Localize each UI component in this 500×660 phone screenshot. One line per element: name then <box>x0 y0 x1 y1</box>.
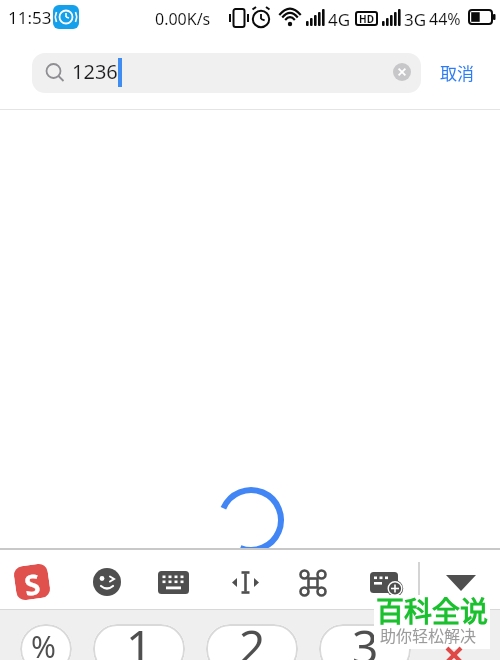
staticText: 1236 <box>72 58 118 85</box>
button[interactable]: % <box>20 624 72 660</box>
button[interactable] <box>370 570 404 597</box>
staticText: 2 <box>239 624 266 660</box>
staticText: 0.00K/s <box>155 8 211 30</box>
button[interactable] <box>393 63 411 81</box>
button[interactable]: 1 <box>93 624 185 660</box>
staticText: 助你轻松解决 <box>380 623 477 646</box>
staticText: 4G <box>328 8 351 31</box>
button[interactable]: 1236 <box>32 53 421 93</box>
button[interactable] <box>231 571 260 594</box>
staticText: 44% <box>429 8 461 30</box>
button[interactable] <box>92 567 122 597</box>
button[interactable]: 取消 <box>440 60 474 85</box>
staticText: 11:53 <box>8 6 52 29</box>
staticText: 取消 <box>440 60 474 85</box>
staticText: HD <box>359 12 374 26</box>
button[interactable] <box>158 571 189 594</box>
button[interactable]: 2 <box>206 624 298 660</box>
staticText: 百科全说 <box>376 590 489 631</box>
staticText: 3G <box>404 8 427 31</box>
button[interactable] <box>299 570 327 596</box>
button[interactable]: 3 <box>319 624 411 660</box>
staticText: 1 <box>126 624 153 660</box>
staticText: % <box>31 626 56 660</box>
staticText: S <box>22 564 42 600</box>
button[interactable]: S <box>13 563 51 601</box>
button[interactable] <box>446 575 476 592</box>
button[interactable]: 百科全说 <box>374 595 490 649</box>
staticText: 3 <box>352 624 379 660</box>
